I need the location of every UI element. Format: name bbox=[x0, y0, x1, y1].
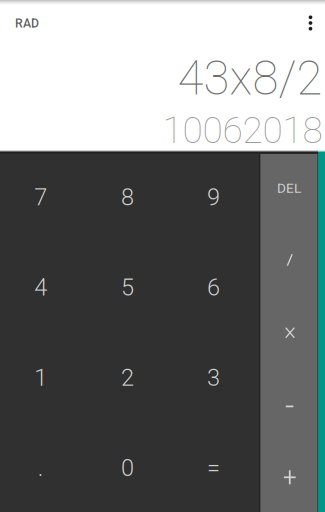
button[interactable]: 2 bbox=[87, 331, 173, 422]
staticText: 2 bbox=[121, 364, 134, 391]
button[interactable]: = bbox=[173, 422, 260, 512]
staticText: DEL bbox=[277, 180, 301, 196]
staticText: 0 bbox=[121, 454, 134, 482]
button[interactable]: Divide bbox=[260, 223, 318, 295]
button[interactable]: 9 bbox=[173, 151, 260, 241]
staticText: 5 bbox=[121, 273, 134, 301]
button[interactable]: 6 bbox=[173, 241, 260, 331]
staticText: 8 bbox=[121, 183, 134, 211]
button[interactable]: 4 bbox=[0, 241, 87, 331]
button[interactable]: 1 bbox=[0, 331, 87, 422]
button[interactable]: 3 bbox=[173, 331, 260, 422]
staticText: 10062018 bbox=[163, 109, 323, 152]
staticText: 4 bbox=[34, 273, 47, 301]
staticText: 9 bbox=[207, 183, 220, 211]
staticText: = bbox=[207, 454, 220, 482]
button[interactable]: Add bbox=[260, 440, 318, 512]
button[interactable]: 5 bbox=[87, 241, 173, 331]
staticText: 3 bbox=[207, 364, 220, 391]
staticText: 43x8/2 bbox=[177, 51, 322, 106]
button[interactable]: Multiply bbox=[260, 295, 318, 368]
staticText: RAD bbox=[15, 16, 39, 30]
button[interactable]: 7 bbox=[0, 151, 87, 241]
button[interactable]: RAD bbox=[15, 3, 63, 43]
staticText: 6 bbox=[207, 273, 220, 301]
button[interactable]: 0 bbox=[87, 422, 173, 512]
staticText: 1 bbox=[34, 364, 47, 391]
staticText: 7 bbox=[34, 183, 47, 211]
button[interactable]: DEL bbox=[260, 152, 318, 224]
staticText: . bbox=[38, 454, 44, 482]
button[interactable]: More options bbox=[293, 3, 325, 43]
button[interactable]: 8 bbox=[87, 151, 173, 241]
button[interactable]: Subtract bbox=[260, 368, 318, 440]
